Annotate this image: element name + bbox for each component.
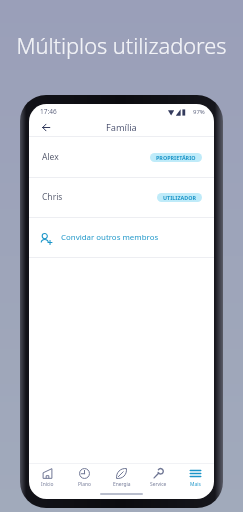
button[interactable]: Service: [140, 464, 177, 499]
button[interactable]: Energia: [103, 464, 140, 499]
staticText: UTILIZADOR: [163, 194, 196, 201]
button[interactable]: Plano: [66, 464, 103, 499]
staticText: PROPRIETÁRIO: [156, 154, 196, 161]
staticText: Convidar outros membros: [61, 232, 159, 243]
staticText: Início: [41, 481, 54, 488]
staticText: Chris: [42, 191, 63, 203]
staticText: 97%: [193, 108, 205, 116]
button[interactable]: Chris: [29, 177, 214, 217]
button[interactable]: Início: [29, 464, 66, 499]
staticText: Mais: [190, 481, 201, 488]
staticText: Alex: [42, 151, 59, 163]
button[interactable]: Mais: [177, 464, 214, 499]
staticText: Service: [150, 481, 167, 488]
button[interactable]: Alex: [29, 137, 214, 177]
staticText: Família: [106, 121, 137, 134]
staticText: Plano: [78, 481, 91, 488]
staticText: Múltiplos utilizadores: [0, 31, 243, 61]
button[interactable]: Back: [37, 119, 54, 136]
button[interactable]: Convidar outros membros: [29, 217, 214, 257]
staticText: 17:46: [40, 107, 57, 116]
staticText: Energia: [113, 481, 131, 488]
